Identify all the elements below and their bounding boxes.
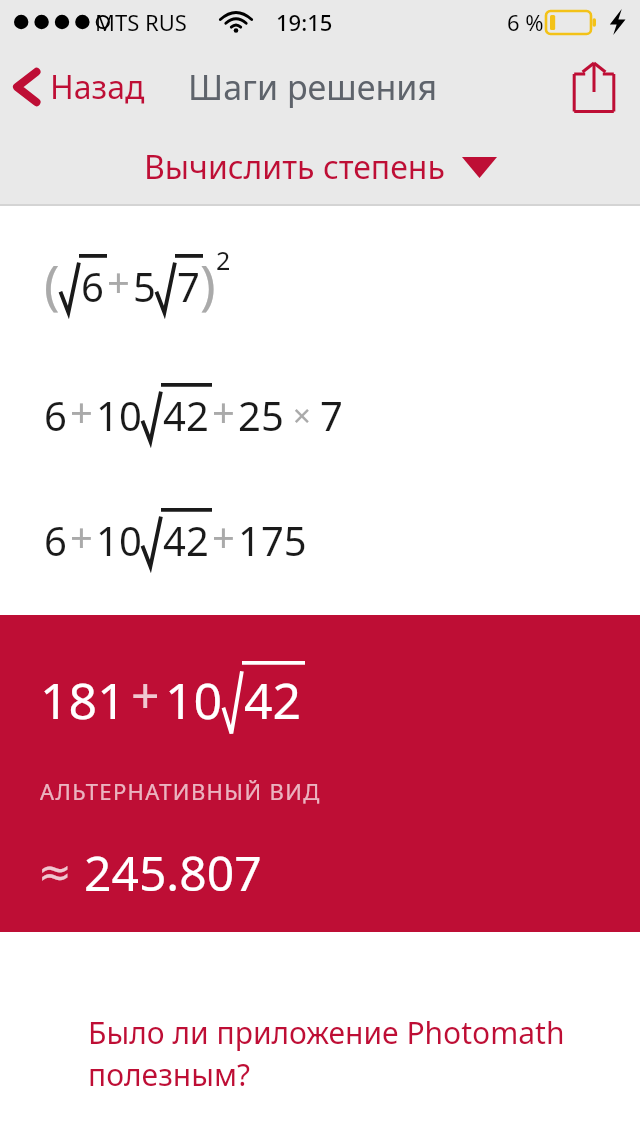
staticText: ): [200, 248, 216, 319]
staticText: 7: [177, 259, 200, 313]
staticText: 42: [163, 513, 209, 567]
staticText: +: [212, 384, 235, 438]
staticText: 181: [40, 666, 126, 734]
staticText: ≈: [38, 849, 72, 896]
staticText: Назад: [50, 65, 145, 109]
staticText: 10: [96, 388, 142, 442]
staticText: +: [70, 509, 93, 563]
staticText: 6: [44, 513, 67, 567]
staticText: 175: [238, 513, 307, 567]
staticText: +: [212, 509, 235, 563]
staticText: 25: [238, 388, 284, 442]
staticText: Шаги решения: [188, 64, 438, 110]
button[interactable]: Было ли приложение Photomath полезным?: [0, 1008, 640, 1109]
button[interactable]: Share: [560, 50, 628, 124]
staticText: 6: [44, 388, 67, 442]
staticText: MTS RUS: [95, 7, 187, 37]
staticText: 42: [163, 388, 209, 442]
staticText: 19:15: [276, 7, 333, 37]
staticText: +: [70, 384, 93, 438]
staticText: 42: [244, 666, 302, 734]
staticText: Было ли приложение Photomath полезным?: [88, 1012, 584, 1095]
button[interactable]: Назад: [0, 57, 155, 117]
staticText: 10: [165, 666, 223, 734]
staticText: 2: [216, 243, 231, 277]
staticText: ×: [293, 394, 311, 436]
staticText: 5: [133, 259, 156, 313]
staticText: +: [107, 254, 130, 308]
staticText: 6: [81, 259, 104, 313]
staticText: АЛЬТЕРНАТИВНЫЙ ВИД: [40, 776, 321, 806]
staticText: Вычислить степень: [144, 145, 445, 189]
staticText: (: [44, 248, 60, 319]
staticText: 7: [320, 388, 343, 442]
staticText: 6 %: [507, 7, 544, 37]
staticText: 10: [96, 513, 142, 567]
staticText: 245.807: [84, 840, 262, 905]
staticText: +: [131, 660, 160, 728]
button[interactable]: Вычислить степень: [128, 137, 513, 197]
